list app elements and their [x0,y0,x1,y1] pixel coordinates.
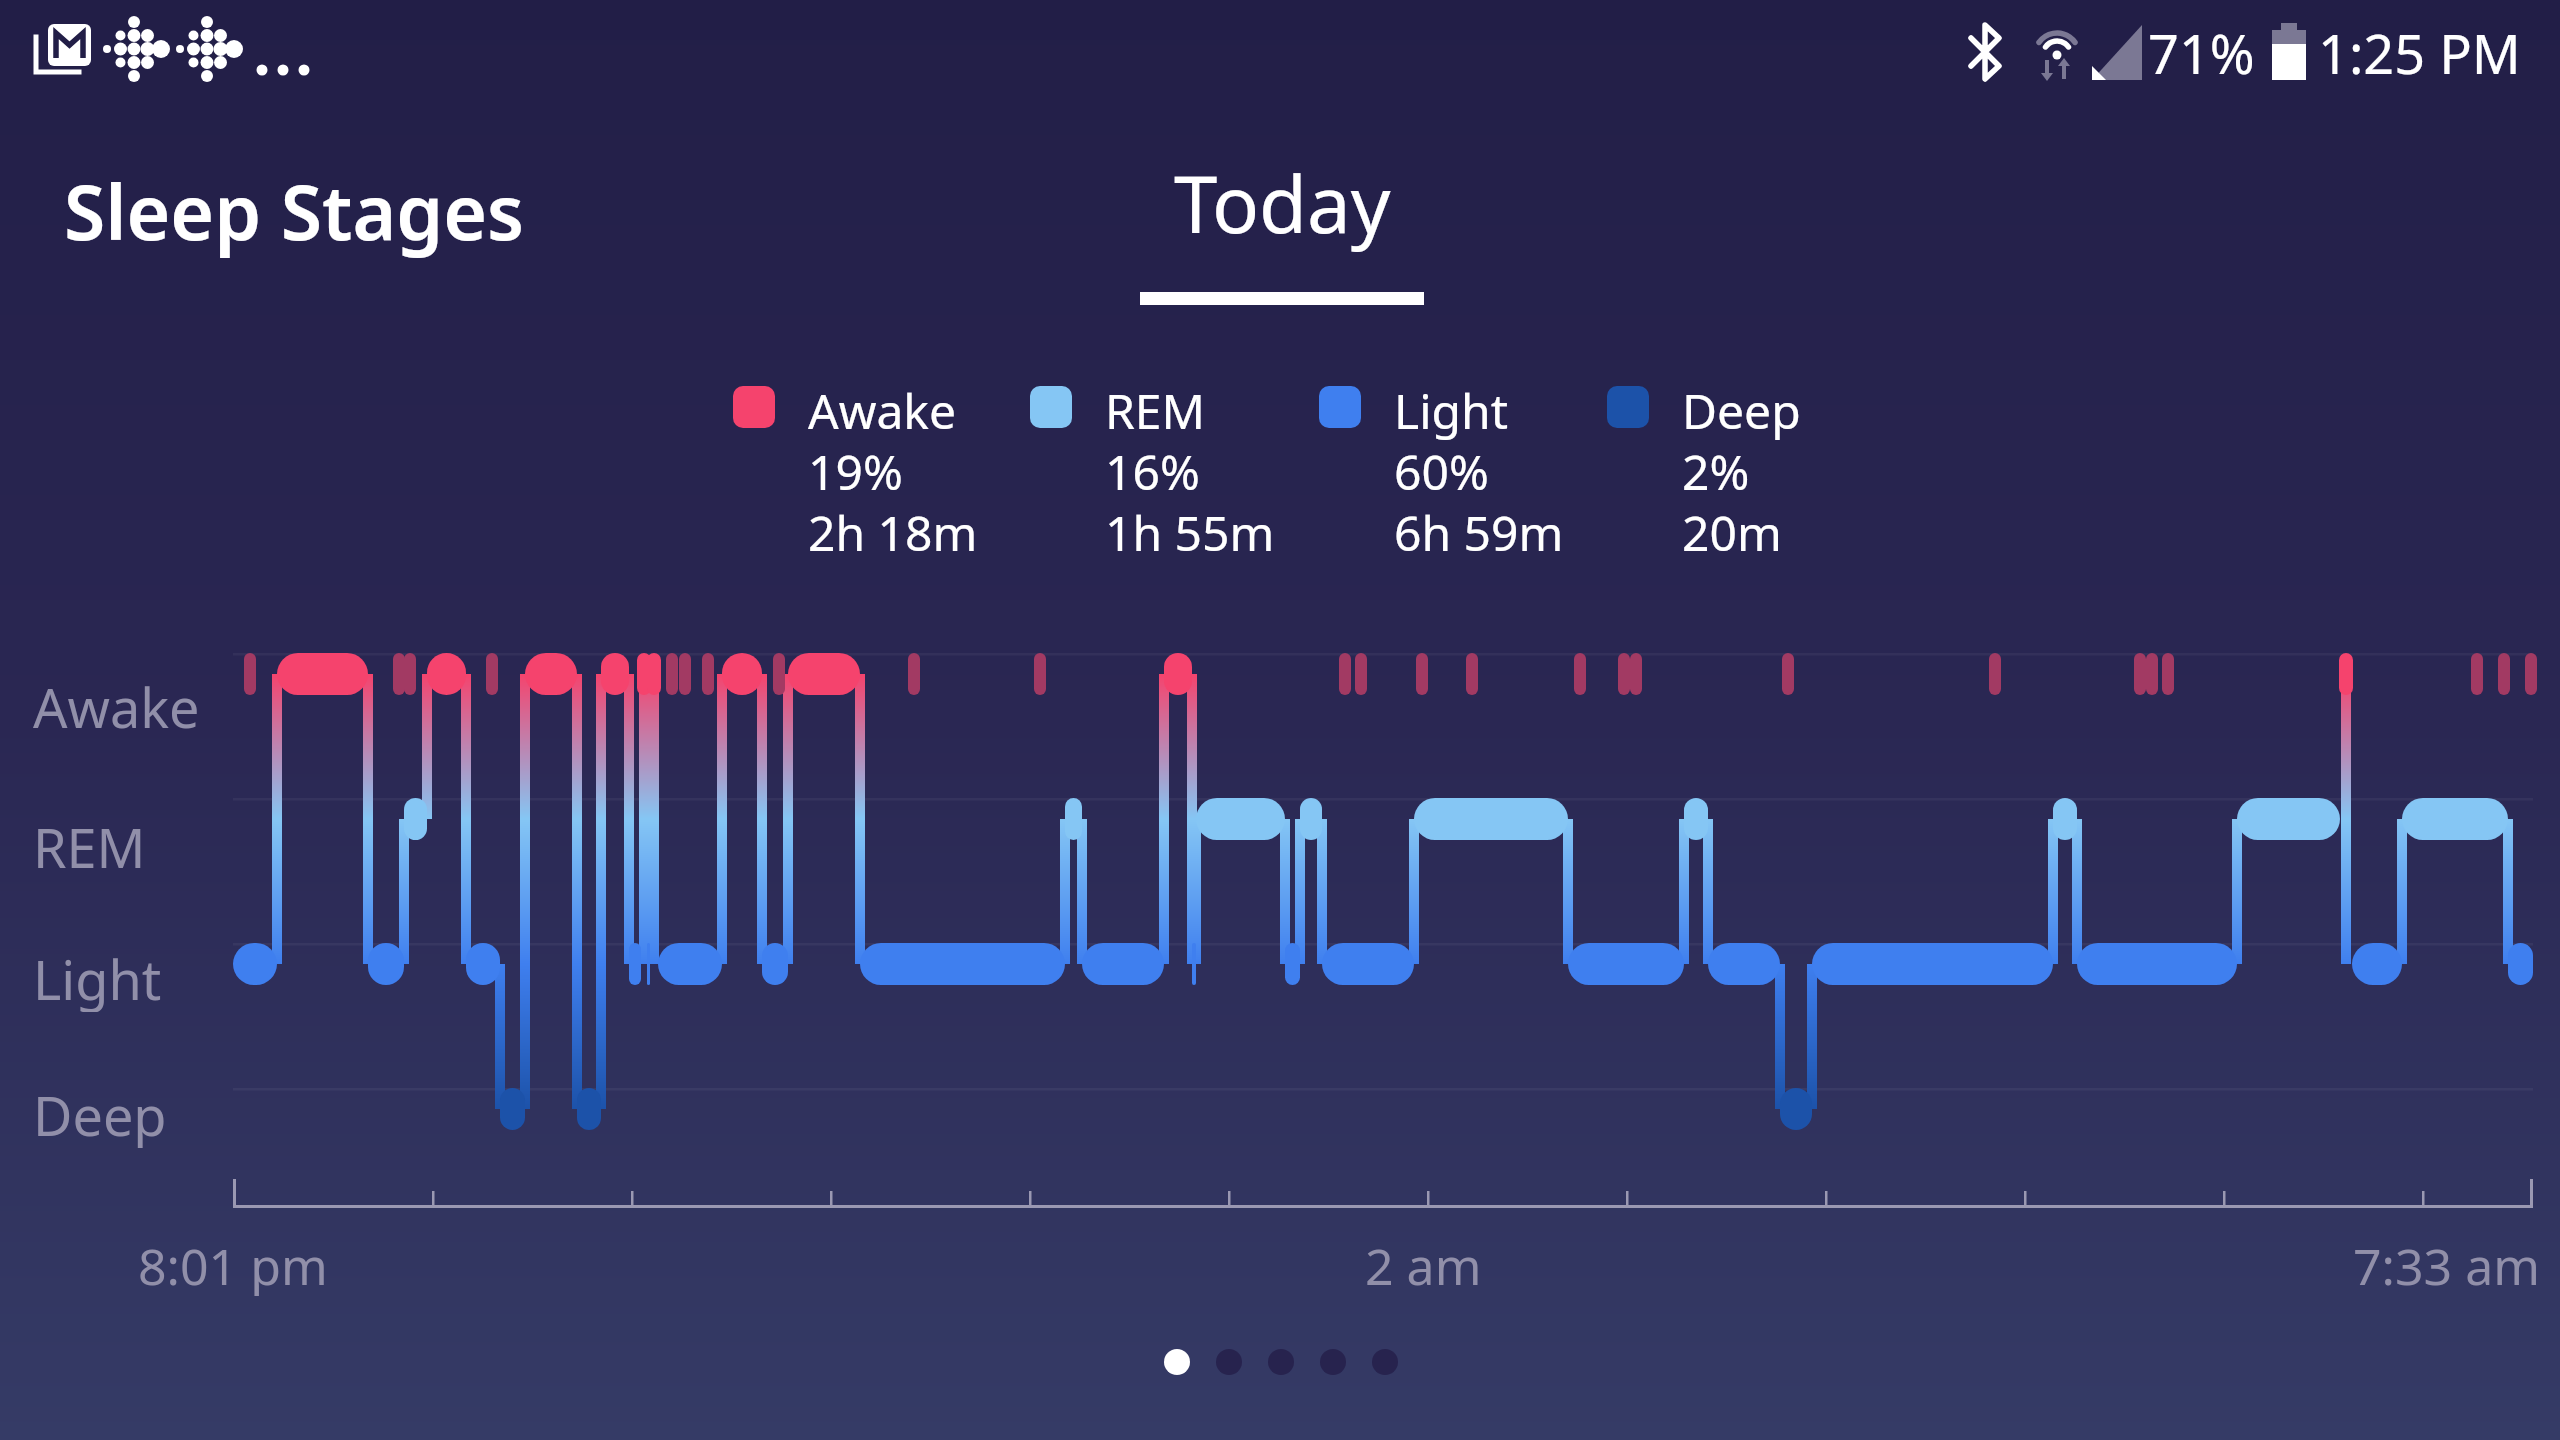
staticText: 7:33 am [2353,1232,2540,1296]
staticText: Light [33,942,162,1012]
staticText: 2 am [1365,1232,1482,1296]
staticText: 6h 59m [1394,500,1564,565]
staticText: Light [1394,378,1509,443]
staticText: 16% [1105,439,1200,504]
staticText: Deep [1682,378,1801,443]
staticText: 20m [1682,500,1782,565]
staticText: Today [1174,150,1391,256]
staticText: 2h 18m [808,500,978,565]
staticText: Awake [33,670,200,740]
staticText: 1:25 PM [2318,16,2521,90]
staticText: 60% [1394,439,1489,504]
staticText: REM [1105,378,1206,443]
staticText: 2% [1682,439,1750,504]
button[interactable] [1150,1340,1410,1384]
staticText: 1h 55m [1105,500,1275,565]
staticText: 71% [2148,16,2255,90]
staticText: Sleep Stages [64,160,525,262]
button[interactable]: Today [1140,150,1424,305]
staticText: REM [33,810,146,880]
staticText: Awake [808,378,957,443]
staticText: 8:01 pm [138,1232,328,1296]
staticText: 19% [808,439,903,504]
staticText: Deep [33,1078,167,1148]
